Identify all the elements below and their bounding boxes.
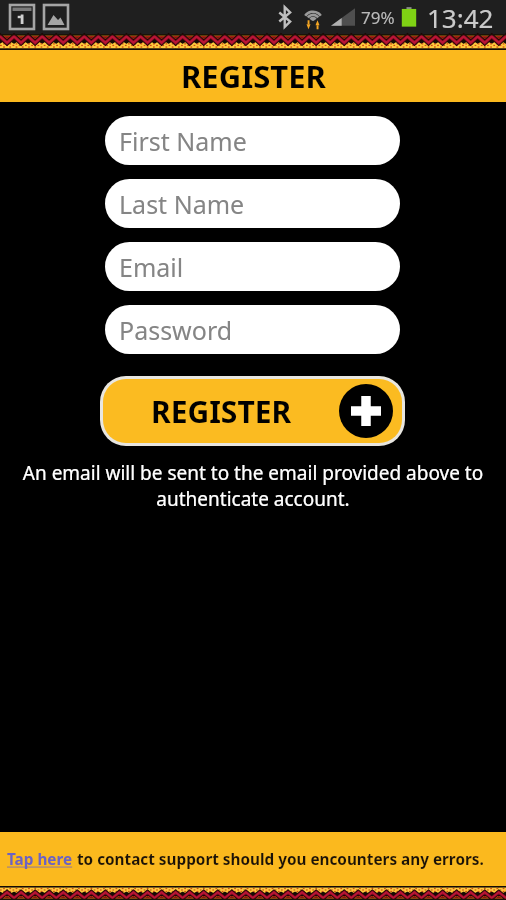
staticText: Tap here [7,849,73,870]
staticText: 13:42 [427,0,494,34]
button[interactable]: REGISTER [103,379,402,443]
staticText: 79% [361,6,395,29]
button[interactable]: Add [339,384,393,438]
staticText: REGISTER [151,391,292,432]
staticText: REGISTER [181,55,326,97]
button[interactable]: Email [105,242,400,291]
staticText: An email will be sent to the email provi… [11,460,495,512]
button[interactable]: Password [105,305,400,354]
staticText: First Name [119,124,247,158]
button[interactable]: Tap here [7,845,73,874]
staticText: Email [119,250,184,284]
staticText: Password [119,313,233,347]
button[interactable]: First Name [105,116,400,165]
staticText: Last Name [119,187,245,221]
staticText: to contact support should you encounters… [73,849,484,870]
button[interactable]: Last Name [105,179,400,228]
